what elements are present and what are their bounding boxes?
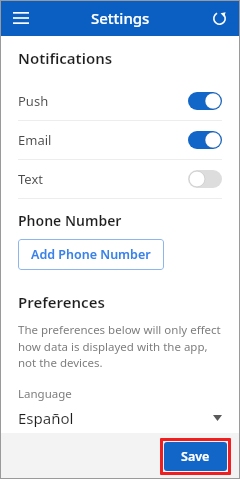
- button[interactable]: Email: [0, 121, 240, 159]
- button[interactable]: Text: [0, 160, 240, 198]
- staticText: Phone Number: [18, 211, 122, 230]
- staticText: Add Phone Number: [31, 246, 151, 263]
- button[interactable]: Push: [0, 82, 240, 120]
- staticText: Language: [18, 386, 72, 402]
- button[interactable]: Español: [18, 408, 222, 433]
- button[interactable]: Add Phone Number: [18, 239, 164, 270]
- button[interactable]: Refresh: [204, 3, 234, 33]
- staticText: Español: [18, 408, 74, 427]
- staticText: Settings: [91, 8, 150, 28]
- staticText: Save: [181, 448, 210, 465]
- staticText: Email: [18, 131, 52, 149]
- button[interactable]: Save: [164, 442, 227, 471]
- staticText: Preferences: [18, 292, 105, 312]
- staticText: Text: [18, 170, 43, 188]
- staticText: The preferences below will only effect h…: [18, 322, 222, 370]
- button[interactable]: Menu: [6, 3, 36, 33]
- staticText: Notifications: [18, 48, 113, 68]
- staticText: Push: [18, 92, 49, 110]
